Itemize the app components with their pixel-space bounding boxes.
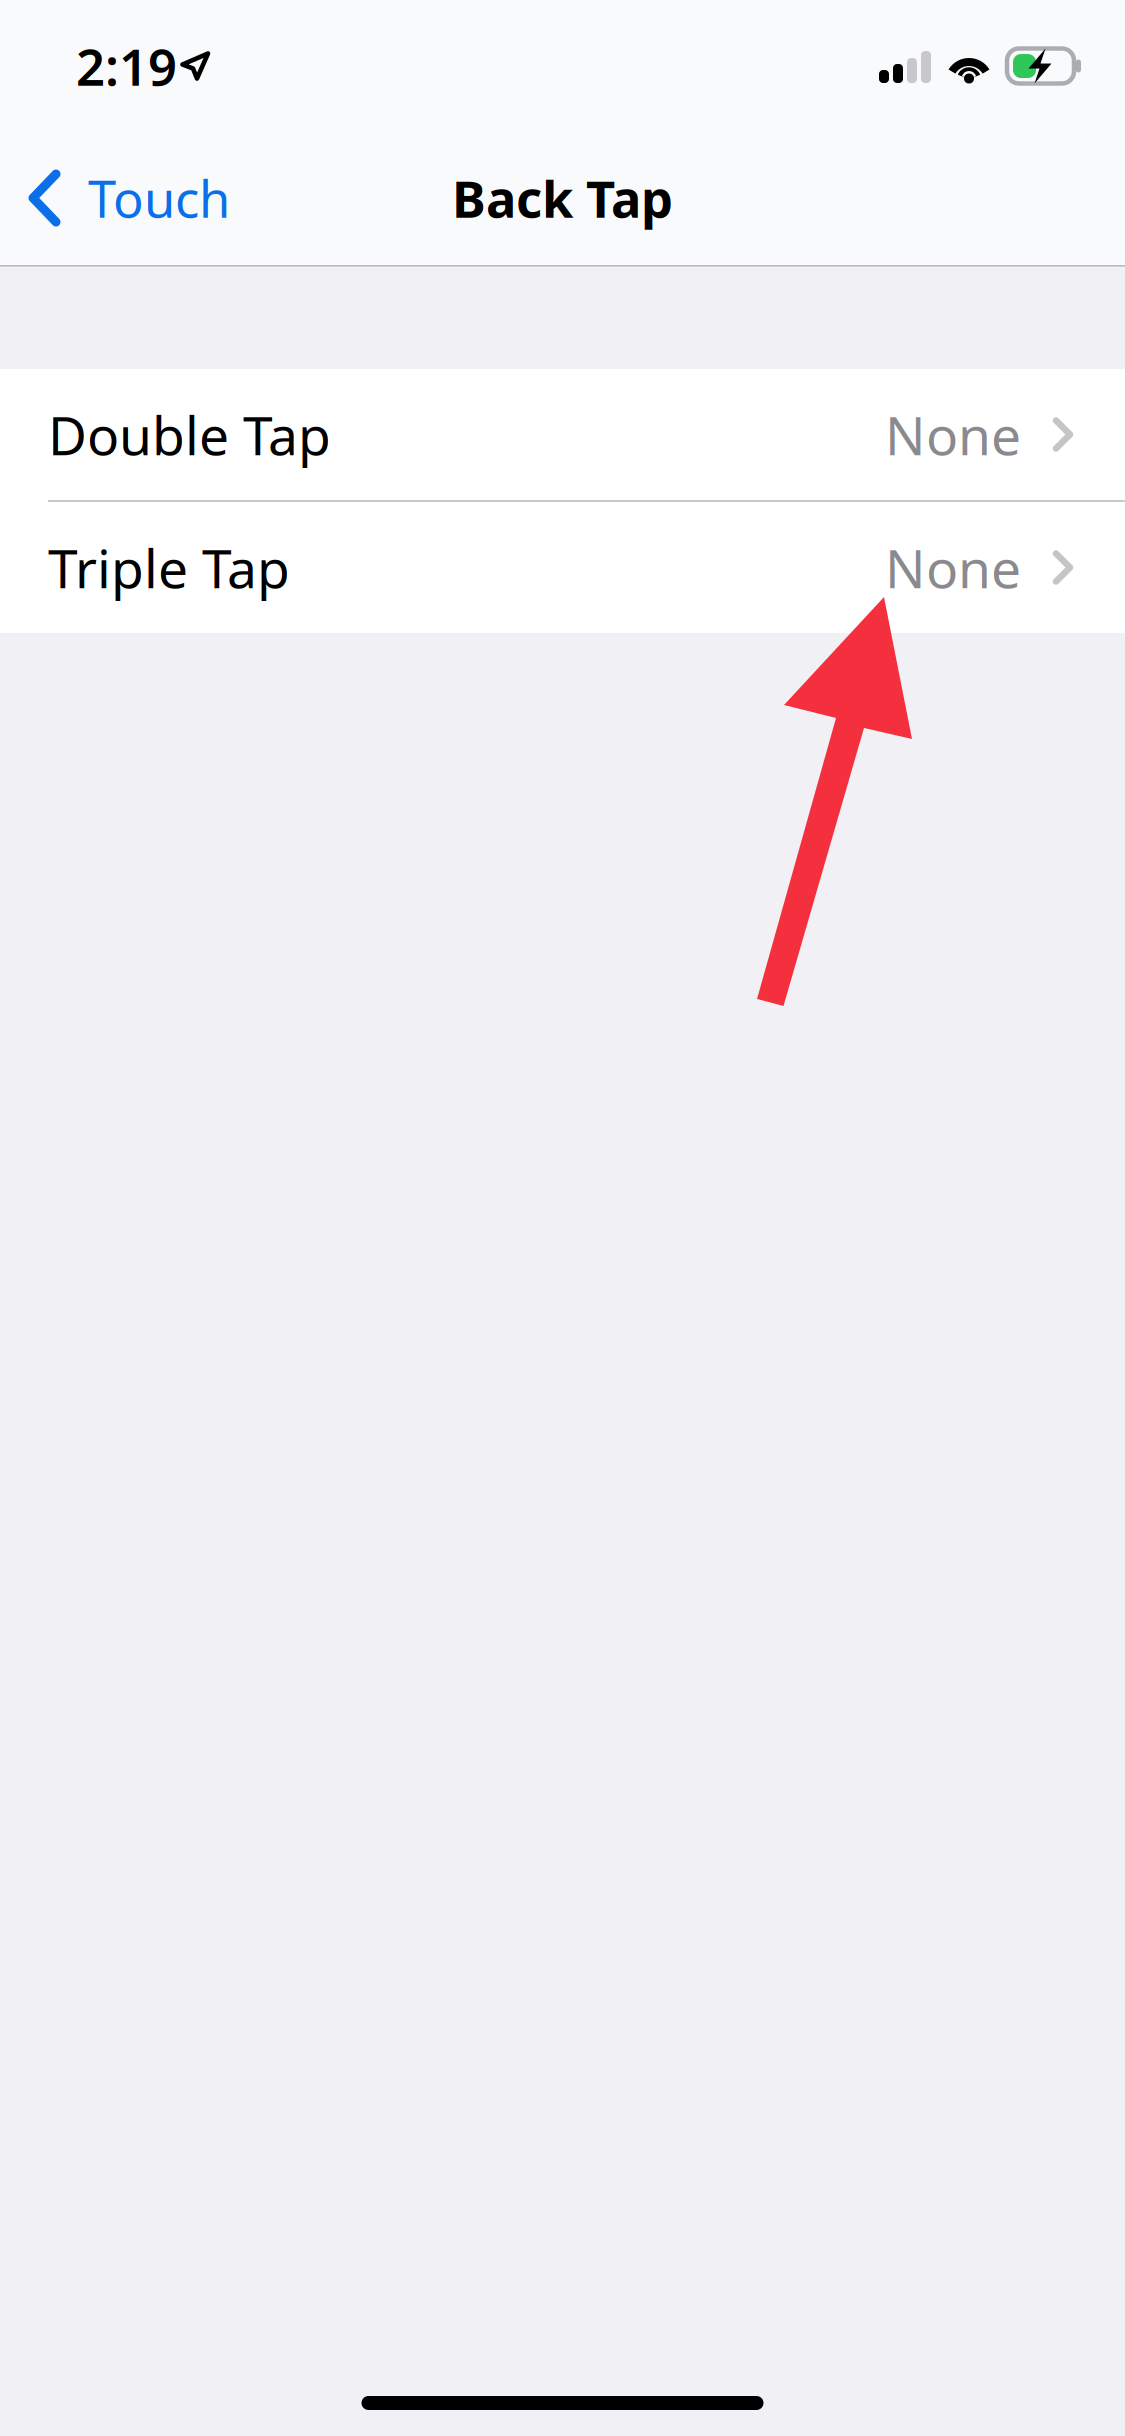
button[interactable]: Triple Tap <box>0 502 1125 633</box>
staticText: Triple Tap <box>48 532 290 603</box>
button[interactable]: Double Tap <box>0 369 1125 500</box>
staticText: Back Tap <box>452 164 673 232</box>
staticText: 2:19 <box>76 32 177 100</box>
staticText: None <box>885 399 1021 470</box>
staticText: None <box>885 532 1021 603</box>
staticText: Touch <box>88 164 230 232</box>
staticText: Double Tap <box>48 399 331 470</box>
button[interactable]: Back to Touch <box>0 144 250 252</box>
